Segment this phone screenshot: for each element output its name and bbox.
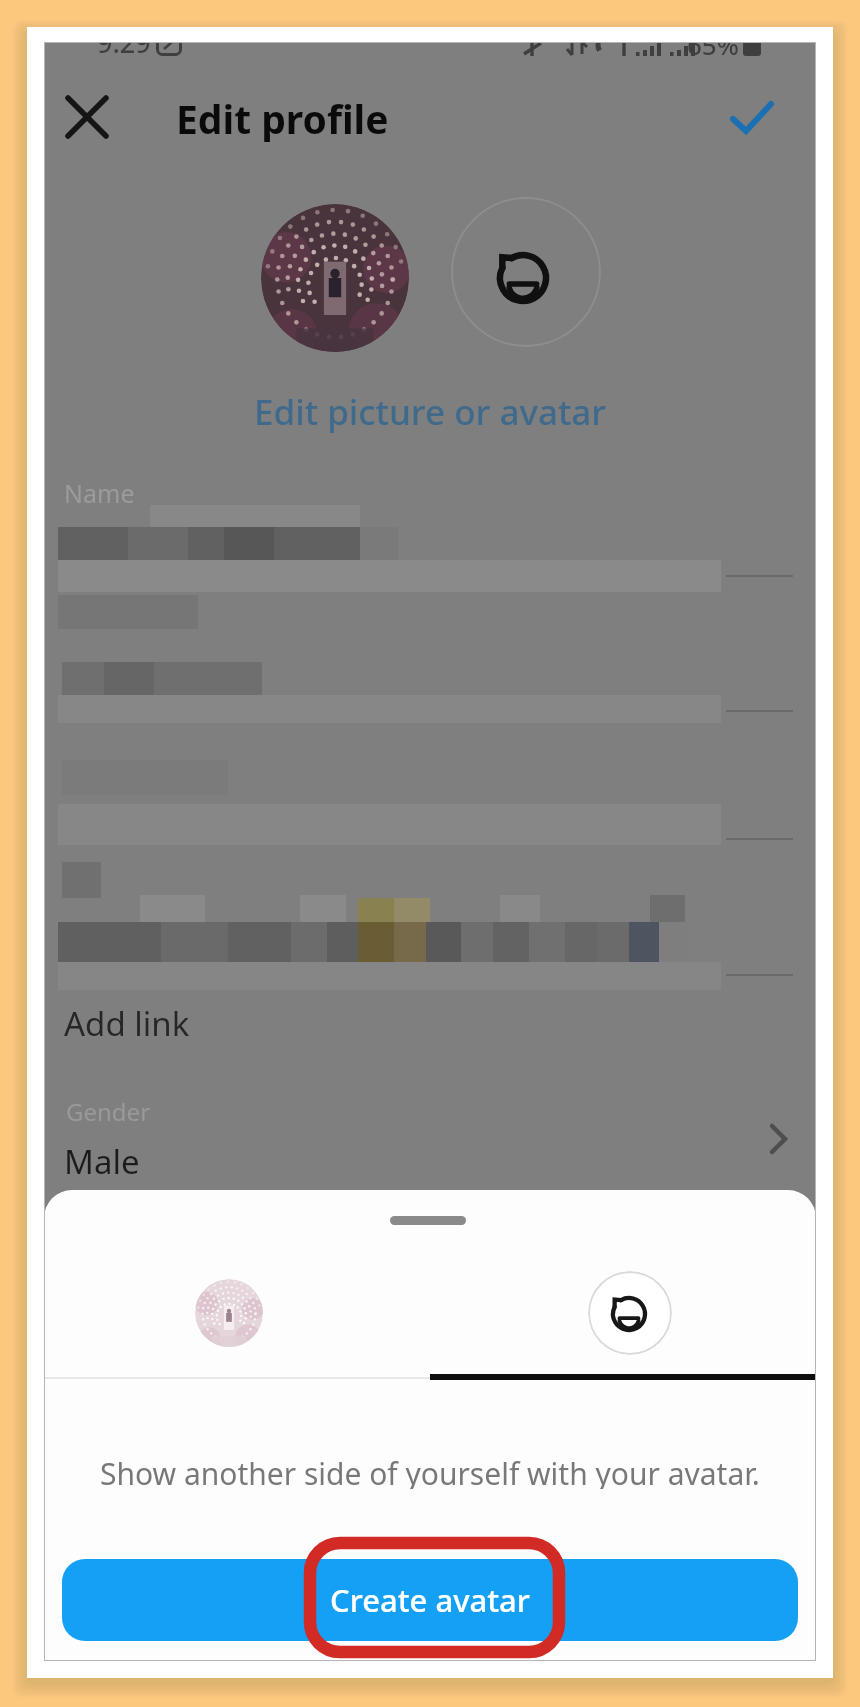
button[interactable] [748,1109,808,1169]
staticText: Show another side of yourself with your … [100,1453,760,1489]
staticText: Add link [64,1001,190,1046]
staticText: Name [64,476,135,510]
button[interactable]: Create avatar [62,1559,798,1641]
button[interactable]: Edit picture or avatar [44,388,816,434]
button[interactable]: Add link [58,1000,358,1046]
staticText: Gender [66,1095,151,1128]
staticText: Male [64,1139,140,1184]
staticText: 65% [687,42,739,59]
staticText: Edit picture or avatar [254,388,607,434]
staticText: Edit profile [176,92,389,142]
button[interactable] [64,94,110,140]
button[interactable] [727,92,777,142]
button[interactable] [451,197,601,347]
button[interactable] [261,204,409,352]
staticText: Create avatar [330,1579,530,1621]
button[interactable] [588,1271,672,1355]
button[interactable] [195,1279,263,1347]
staticText: 9:29 [97,42,151,58]
